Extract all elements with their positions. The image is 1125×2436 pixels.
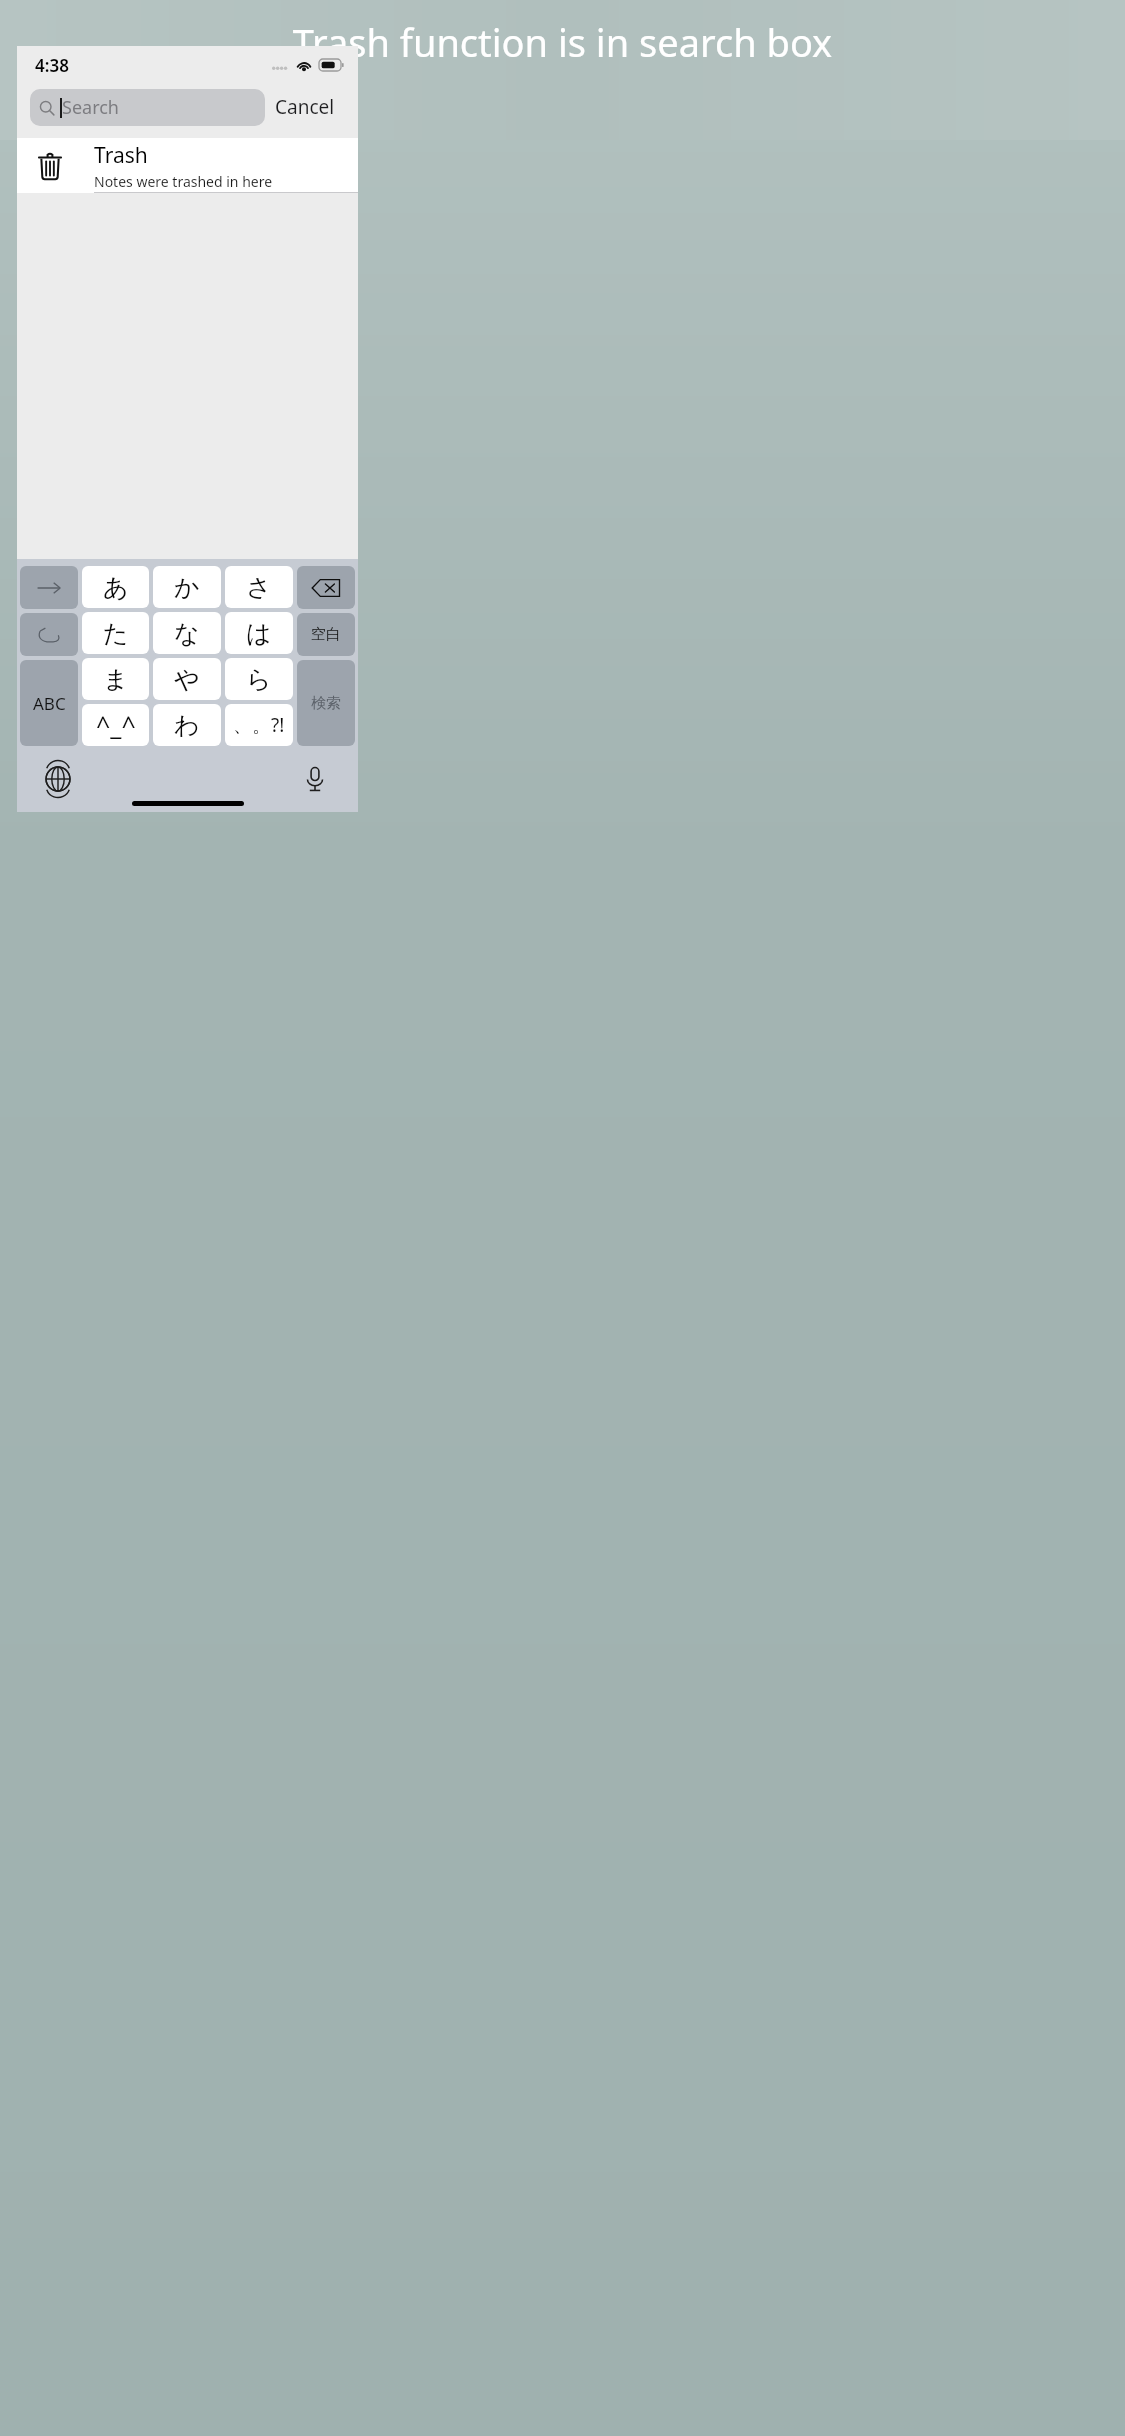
button[interactable]: あ — [82, 566, 149, 608]
button[interactable]: な — [153, 612, 221, 654]
button[interactable]: わ — [153, 704, 221, 746]
button[interactable]: 空白 — [297, 613, 355, 656]
staticText: わ — [174, 710, 200, 741]
staticText: 4:38 — [35, 54, 69, 77]
staticText: Trash function is in search box — [0, 16, 1125, 68]
button[interactable]: Search — [30, 89, 265, 126]
staticText: な — [174, 618, 200, 649]
button[interactable]: や — [153, 658, 221, 700]
button[interactable]: Undo — [20, 613, 78, 656]
button[interactable]: ABC keyboard — [20, 660, 78, 746]
staticText: Cancel — [275, 94, 335, 120]
staticText: さ — [246, 572, 272, 603]
button[interactable]: ^_^ — [82, 704, 149, 746]
button[interactable]: Next candidate — [20, 566, 78, 609]
staticText: あ — [103, 572, 129, 603]
staticText: ま — [103, 664, 129, 695]
button[interactable]: ま — [82, 658, 149, 700]
button[interactable]: Trash — [17, 138, 358, 193]
staticText: 検索 — [311, 694, 341, 713]
button[interactable]: は — [225, 612, 293, 654]
button[interactable]: た — [82, 612, 149, 654]
button[interactable]: 検索 — [297, 660, 355, 746]
staticText: 、。?! — [233, 712, 285, 738]
button[interactable]: さ — [225, 566, 293, 608]
button[interactable]: 、。?! — [225, 704, 293, 746]
staticText: ^_^ — [96, 708, 136, 742]
button[interactable]: か — [153, 566, 221, 608]
staticText: Notes were trashed in here — [94, 172, 273, 191]
button[interactable]: Change keyboard — [41, 762, 75, 796]
button[interactable]: Dictation — [298, 762, 332, 796]
button[interactable]: ら — [225, 658, 293, 700]
staticText: か — [174, 572, 200, 603]
staticText: ら — [246, 664, 272, 695]
staticText: や — [174, 664, 200, 695]
staticText: た — [103, 618, 129, 649]
staticText: ABC — [33, 692, 66, 715]
button[interactable]: Cancel — [265, 88, 345, 126]
staticText: Trash — [94, 141, 148, 170]
button[interactable]: Delete — [297, 566, 355, 609]
staticText: Search — [62, 95, 119, 120]
staticText: 空白 — [311, 625, 341, 644]
staticText: は — [246, 618, 272, 649]
